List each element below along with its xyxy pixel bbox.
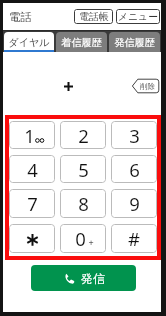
button[interactable]: 着信履歴 [56,32,107,52]
button[interactable] [9,224,55,253]
button[interactable]: 2 [60,121,106,149]
staticText: 9 [129,191,140,216]
staticText: 電話帳 [79,11,109,23]
staticText: 発信履歴 [114,36,155,49]
button[interactable]: 6 [111,155,157,183]
staticText: 着信履歴 [61,36,102,49]
button[interactable]: メニュー [116,9,160,24]
staticText: 8 [78,191,89,216]
staticText: 1 [24,123,35,148]
staticText: 電話 [9,10,32,24]
button[interactable]: # [111,224,157,253]
button[interactable]: 発信 [31,265,136,291]
staticText: 削除 [140,82,155,91]
staticText: メニュー [118,11,158,23]
button[interactable]: 9 [111,189,157,218]
button[interactable]: ダイヤル [4,32,54,52]
button[interactable]: 3 [111,121,157,149]
button[interactable]: 1 [9,121,55,149]
staticText: 2 [78,123,89,148]
staticText: 7 [27,191,38,216]
button[interactable]: 5 [60,155,106,183]
staticText: ダイヤル [8,36,50,49]
staticText: 0 [75,226,86,251]
staticText: 5 [78,157,89,182]
staticText: 6 [129,157,140,182]
staticText: + [88,236,94,248]
button[interactable]: 7 [9,189,55,218]
button[interactable]: 4 [9,155,55,183]
button[interactable]: 0 [60,224,106,253]
button[interactable]: 8 [60,189,106,218]
staticText: 発信 [81,271,105,286]
button[interactable]: 削除 [131,78,160,94]
staticText: # [128,226,140,251]
button[interactable]: 発信履歴 [109,32,160,52]
button[interactable]: 電話帳 [74,9,113,24]
staticText: 4 [27,157,38,182]
staticText: 3 [129,123,140,148]
